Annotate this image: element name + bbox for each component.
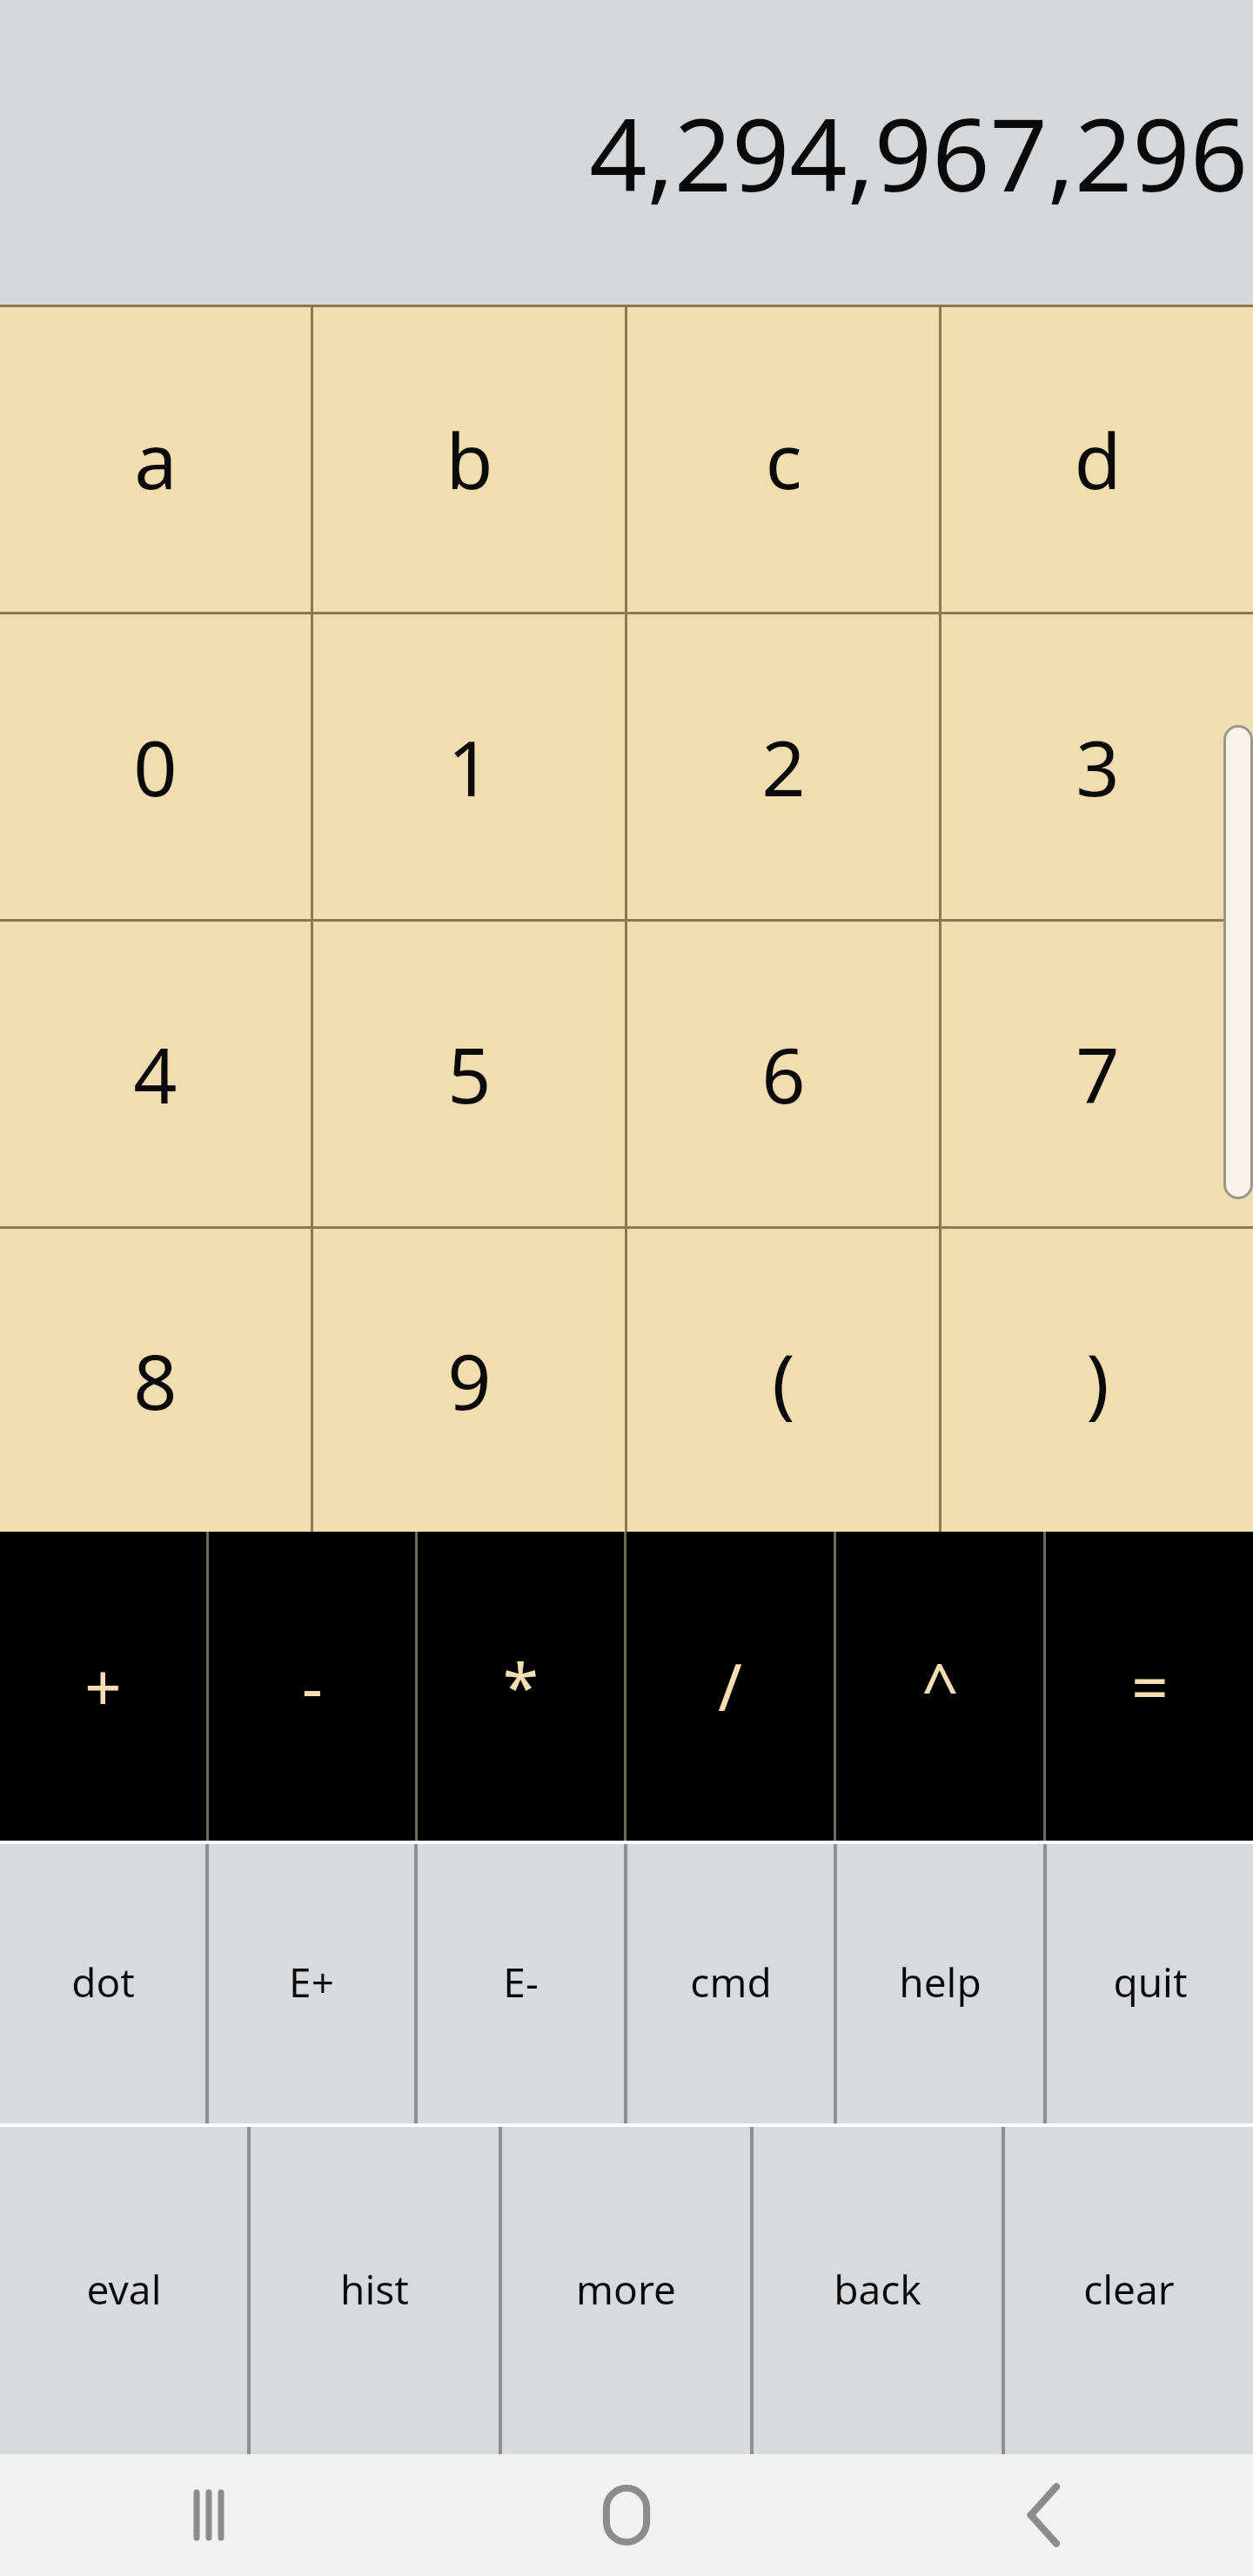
staticText: cmd	[690, 1955, 772, 2009]
button[interactable]: 1	[313, 614, 625, 919]
button[interactable]: d	[941, 307, 1253, 612]
button[interactable]: 8	[0, 1229, 311, 1532]
button[interactable]: more	[502, 2123, 750, 2454]
button[interactable]: Home	[418, 2454, 835, 2576]
button[interactable]: 3	[941, 614, 1253, 919]
staticText: )	[1086, 1328, 1109, 1432]
staticText: 5	[447, 1022, 492, 1126]
button[interactable]: -	[209, 1532, 415, 1841]
staticText: -	[302, 1642, 323, 1730]
button[interactable]: +	[0, 1532, 206, 1841]
button[interactable]: cmd	[627, 1841, 834, 2123]
button[interactable]: back	[754, 2123, 1002, 2454]
button[interactable]: clear	[1005, 2123, 1253, 2454]
button[interactable]: 4	[0, 922, 311, 1226]
button[interactable]: b	[313, 307, 625, 612]
button[interactable]: 6	[627, 922, 939, 1226]
staticText: clear	[1083, 2262, 1175, 2317]
button[interactable]: 5	[313, 922, 625, 1226]
button[interactable]: )	[941, 1229, 1253, 1532]
staticText: E+	[289, 1955, 334, 2009]
button[interactable]: =	[1046, 1532, 1253, 1841]
button[interactable]: 2	[627, 614, 939, 919]
button[interactable]: 0	[0, 614, 311, 919]
button[interactable]: *	[418, 1532, 624, 1841]
button[interactable]: (	[627, 1229, 939, 1532]
staticText: /	[718, 1642, 742, 1730]
button[interactable]: Recent apps	[0, 2454, 418, 2576]
staticText: 0	[133, 714, 178, 819]
staticText: c	[765, 407, 802, 512]
button[interactable]: help	[837, 1841, 1043, 2123]
button[interactable]: c	[627, 307, 939, 612]
button[interactable]: a	[0, 307, 311, 612]
button[interactable]: dot	[0, 1841, 205, 2123]
staticText: a	[134, 407, 178, 512]
staticText: (	[772, 1328, 795, 1432]
staticText: more	[576, 2262, 676, 2317]
button[interactable]: /	[626, 1532, 834, 1841]
button[interactable]: hist	[251, 2123, 499, 2454]
staticText: quit	[1113, 1955, 1188, 2009]
button[interactable]: eval	[0, 2123, 247, 2454]
staticText: help	[899, 1955, 982, 2009]
staticText: 4,294,967,296	[0, 84, 1248, 221]
button[interactable]: ^	[836, 1532, 1043, 1841]
staticText: dot	[71, 1955, 135, 2009]
staticText: 8	[133, 1328, 178, 1432]
staticText: back	[834, 2262, 921, 2317]
staticText: 2	[761, 714, 806, 819]
staticText: b	[446, 407, 493, 512]
staticText: 9	[447, 1328, 492, 1432]
staticText: =	[1131, 1642, 1169, 1730]
button[interactable]: 9	[313, 1229, 625, 1532]
button[interactable]: 7	[941, 922, 1253, 1226]
staticText: eval	[86, 2262, 162, 2317]
staticText: 7	[1075, 1022, 1120, 1126]
staticText: 1	[447, 714, 492, 819]
staticText: E-	[503, 1955, 539, 2009]
staticText: ^	[921, 1642, 959, 1730]
staticText: hist	[340, 2262, 409, 2317]
staticText: *	[503, 1642, 539, 1730]
staticText: d	[1074, 407, 1122, 512]
staticText: 3	[1075, 714, 1120, 819]
button[interactable]: quit	[1047, 1841, 1253, 2123]
button[interactable]: E+	[209, 1841, 414, 2123]
staticText: 6	[761, 1022, 806, 1126]
staticText: 4	[133, 1022, 178, 1126]
button[interactable]: E-	[418, 1841, 624, 2123]
button[interactable]: Back	[835, 2454, 1253, 2576]
staticText: +	[84, 1642, 122, 1730]
